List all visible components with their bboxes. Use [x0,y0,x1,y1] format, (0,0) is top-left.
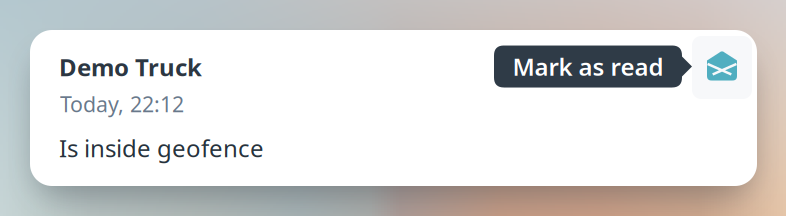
staticText: Is inside geofence [59,132,264,164]
button[interactable]: Mark as read [494,45,692,87]
button[interactable]: Mark as read [692,36,752,99]
staticText: Demo Truck [59,51,202,83]
staticText: Mark as read [512,51,663,82]
staticText: Today, 22:12 [60,90,184,118]
